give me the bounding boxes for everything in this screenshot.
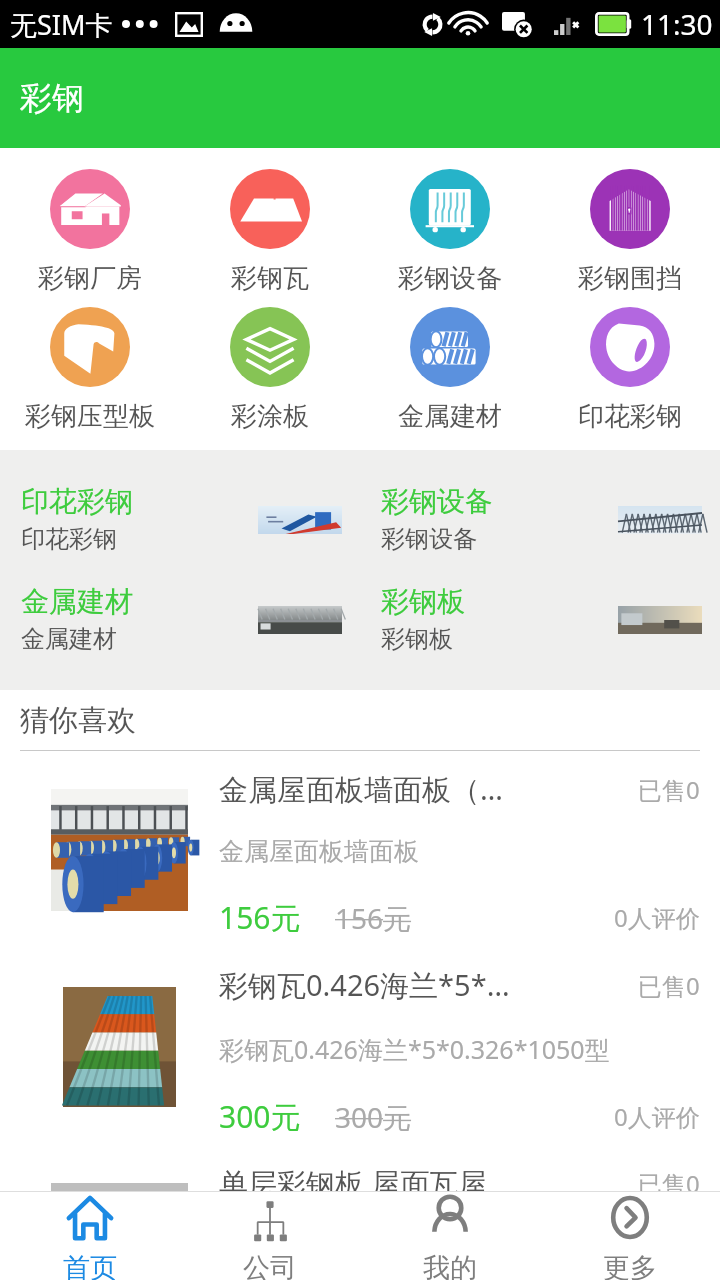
button[interactable]: 彩钢板	[360, 581, 720, 657]
button[interactable]: 印花彩钢	[540, 307, 720, 433]
staticText: 彩钢厂房	[38, 262, 142, 295]
staticText: 印花彩钢	[21, 484, 133, 519]
staticText: 金属建材	[21, 624, 117, 654]
staticText: 彩钢板	[381, 624, 453, 654]
staticText: 公司	[243, 1251, 297, 1280]
staticText: 11:30	[641, 5, 713, 43]
staticText: 彩钢	[20, 78, 84, 118]
staticText: 彩钢瓦0.426海兰*5*…	[219, 965, 638, 1005]
staticText: 彩钢瓦	[231, 262, 309, 295]
staticText: 彩钢板	[381, 584, 465, 619]
button[interactable]: 我的	[360, 1192, 540, 1280]
staticText: 单层彩钢板 屋面瓦屋	[219, 1163, 638, 1203]
button[interactable]: 金属屋面板墙面板（…	[0, 751, 720, 948]
button[interactable]: 彩钢设备	[360, 169, 540, 295]
staticText: 300元	[219, 1096, 301, 1137]
staticText: 我的	[423, 1251, 477, 1280]
staticText: 首页	[63, 1251, 117, 1280]
staticText: 金属建材	[398, 400, 502, 433]
staticText: 已售0	[638, 1167, 700, 1200]
staticText: 彩钢设备	[381, 524, 477, 554]
button[interactable]: 单层彩钢板 屋面瓦屋	[0, 1145, 720, 1280]
staticText: 印花彩钢	[578, 400, 682, 433]
button[interactable]: 彩钢压型板	[0, 307, 180, 433]
staticText: 已售0	[638, 969, 700, 1002]
button[interactable]: 彩钢厂房	[0, 169, 180, 295]
button[interactable]: 彩钢设备	[360, 481, 720, 557]
staticText: 彩钢设备	[381, 484, 493, 519]
staticText: 金属屋面板墙面板（…	[219, 769, 638, 809]
button[interactable]: 印花彩钢	[0, 481, 360, 557]
button[interactable]: 公司	[180, 1192, 360, 1280]
staticText: 更多	[603, 1251, 657, 1280]
staticText: 无SIM卡	[10, 6, 113, 43]
button[interactable]: 彩涂板	[180, 307, 360, 433]
staticText: 印花彩钢	[21, 524, 117, 554]
staticText: 彩涂板	[231, 400, 309, 433]
staticText: 156元	[335, 899, 412, 937]
staticText: 猜你喜欢	[20, 702, 136, 739]
staticText: 156元	[219, 897, 301, 938]
staticText: 金属屋面板墙面板	[219, 836, 419, 867]
staticText: 0人评价	[614, 1100, 700, 1133]
staticText: 彩钢压型板	[25, 400, 155, 433]
staticText: 300元	[335, 1098, 412, 1136]
button[interactable]: 彩钢瓦0.426海兰*5*…	[0, 948, 720, 1145]
button[interactable]: 彩钢瓦	[180, 169, 360, 295]
button[interactable]: 彩钢围挡	[540, 169, 720, 295]
button[interactable]: 更多	[540, 1192, 720, 1280]
button[interactable]: 金属建材	[360, 307, 540, 433]
button[interactable]: 首页	[0, 1192, 180, 1280]
staticText: 已售0	[638, 773, 700, 806]
staticText: 0人评价	[614, 901, 700, 934]
staticText: 彩钢瓦0.426海兰*5*0.326*1050型	[219, 1032, 610, 1066]
button[interactable]: 金属建材	[0, 581, 360, 657]
staticText: 彩钢设备	[398, 262, 502, 295]
staticText: 金属建材	[21, 584, 133, 619]
staticText: 单层彩钢板	[219, 1230, 344, 1261]
staticText: 彩钢围挡	[578, 262, 682, 295]
